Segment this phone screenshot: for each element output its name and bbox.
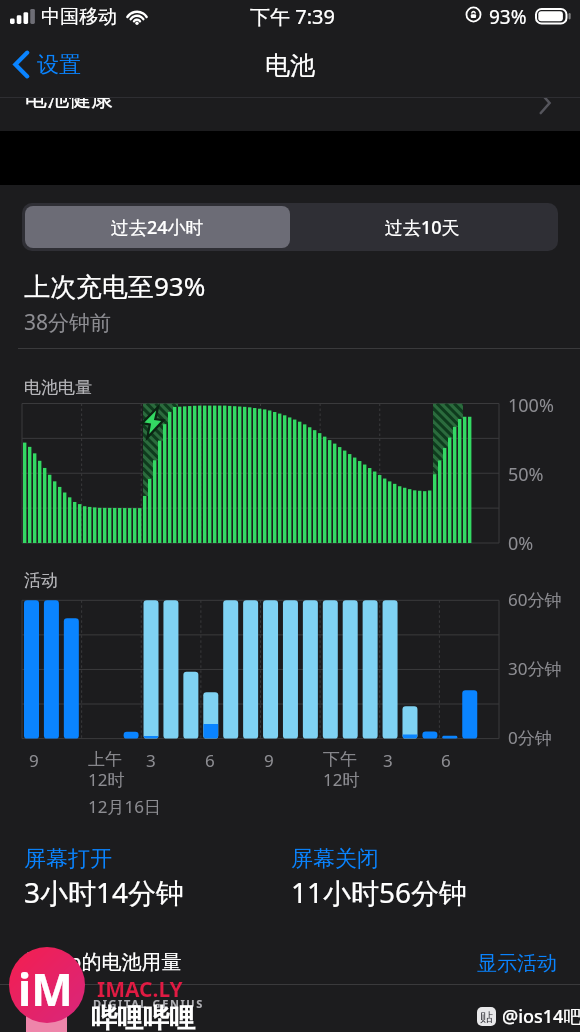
staticText: 12月16日 bbox=[88, 795, 161, 818]
staticText: iM bbox=[18, 959, 73, 1019]
staticText: 下午 12时 bbox=[323, 749, 360, 791]
staticText: 电池健康 bbox=[25, 97, 113, 113]
staticText: 活动 bbox=[24, 570, 58, 591]
staticText: 60分钟 bbox=[508, 588, 562, 611]
staticText: 3 bbox=[383, 749, 393, 772]
staticText: 3 bbox=[146, 749, 156, 772]
staticText: 电池 bbox=[265, 50, 315, 81]
staticText: 屏幕关闭 bbox=[291, 845, 379, 873]
staticText: 9 bbox=[264, 749, 274, 772]
staticText: 93% bbox=[489, 4, 527, 30]
staticText: 50% bbox=[508, 462, 544, 487]
staticText: 上午 12时 bbox=[88, 749, 125, 791]
staticText: 过去24小时 bbox=[111, 215, 204, 240]
staticText: 哔哩哔哩 bbox=[91, 1002, 195, 1032]
staticText: DIGITAL GENIUS bbox=[93, 996, 204, 1011]
staticText: 6 bbox=[441, 749, 451, 772]
staticText: 下午 7:39 bbox=[250, 3, 335, 30]
button[interactable]: 过去24小时 bbox=[25, 206, 290, 248]
staticText: 0% bbox=[508, 531, 534, 556]
button[interactable]: 电池健康 bbox=[0, 97, 580, 131]
staticText: 11小时56分钟 bbox=[291, 873, 468, 911]
staticText: 9 bbox=[29, 749, 39, 772]
staticText: 中国移动 bbox=[41, 5, 117, 29]
staticText: 过去10天 bbox=[385, 215, 460, 240]
staticText: 6 bbox=[205, 749, 215, 772]
staticText: 显示活动 bbox=[477, 951, 557, 976]
staticText: 按App的电池用量 bbox=[24, 948, 182, 975]
staticText: @ios14吧 bbox=[502, 1004, 580, 1029]
button[interactable]: 设置 bbox=[6, 46, 93, 83]
staticText: 0分钟 bbox=[508, 726, 552, 749]
staticText: 屏幕打开 bbox=[24, 845, 112, 873]
staticText: 100% bbox=[508, 393, 554, 418]
staticText: 38分钟前 bbox=[24, 308, 112, 337]
button[interactable]: 显示活动 bbox=[477, 951, 557, 976]
staticText: IMAC.LY bbox=[97, 975, 183, 1004]
staticText: 设置 bbox=[37, 51, 81, 79]
staticText: 3小时14分钟 bbox=[24, 873, 185, 911]
button[interactable]: 按App的电池用量 bbox=[24, 948, 182, 975]
staticText: 30分钟 bbox=[508, 657, 562, 680]
button[interactable]: 屏幕关闭 bbox=[291, 845, 379, 873]
staticText: 电池电量 bbox=[24, 377, 92, 398]
button[interactable]: 屏幕打开 bbox=[24, 845, 112, 873]
staticText: 上次充电至93% bbox=[24, 268, 206, 304]
button[interactable]: 过去10天 bbox=[290, 206, 555, 248]
staticText: 贴 bbox=[480, 1009, 493, 1025]
